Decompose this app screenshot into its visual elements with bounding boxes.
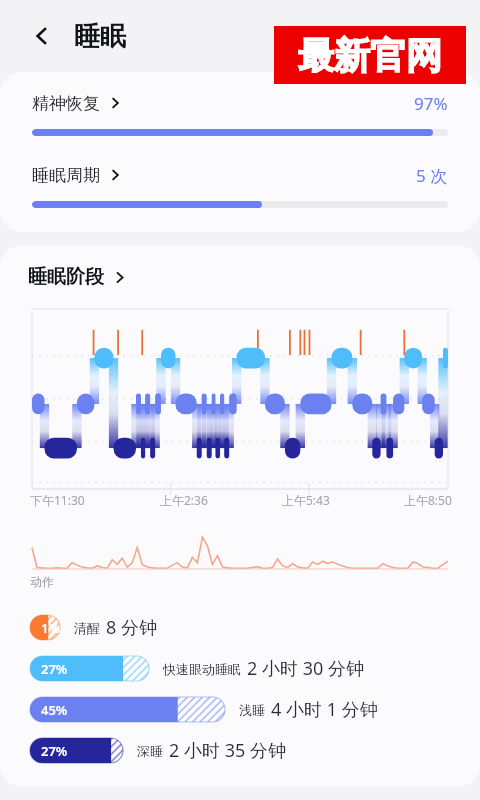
staticText: 上午8:50 [404, 492, 452, 508]
staticText: 上午5:43 [282, 492, 330, 508]
staticText: 27% [41, 660, 68, 678]
staticText: 睡眠周期 [32, 165, 100, 186]
staticText: 动作 [30, 574, 54, 589]
staticText: 45% [41, 701, 68, 719]
staticText: 快速眼动睡眠 [163, 661, 241, 677]
button[interactable]: 45% [30, 697, 472, 722]
button[interactable]: Back [24, 18, 60, 54]
staticText: 睡眠阶段 [28, 265, 104, 289]
staticText: 睡眠 [74, 20, 126, 53]
button[interactable]: 1% [30, 615, 472, 640]
staticText: 1% [41, 619, 60, 637]
button[interactable]: 睡眠阶段 [28, 265, 126, 289]
staticText: 清醒 [74, 620, 100, 636]
staticText: 最新官网 [298, 33, 442, 78]
staticText: 深睡 [137, 743, 163, 759]
button[interactable]: 27% [30, 656, 472, 681]
staticText: 2 小时 35 分钟 [169, 738, 286, 763]
button[interactable]: 睡眠周期 [32, 162, 448, 188]
staticText: 下午11:30 [30, 492, 85, 508]
staticText: 27% [41, 742, 68, 760]
staticText: 浅睡 [239, 702, 265, 718]
button[interactable]: 精神恢复 [32, 90, 448, 116]
staticText: 精神恢复 [32, 93, 100, 114]
staticText: 5 次 [416, 164, 448, 187]
staticText: 97% [414, 92, 448, 115]
button[interactable]: 27% [30, 738, 472, 763]
staticText: 8 分钟 [106, 615, 157, 640]
staticText: 4 小时 1 分钟 [271, 697, 378, 722]
staticText: 2 小时 30 分钟 [247, 656, 364, 681]
staticText: 上午2:36 [160, 492, 208, 508]
